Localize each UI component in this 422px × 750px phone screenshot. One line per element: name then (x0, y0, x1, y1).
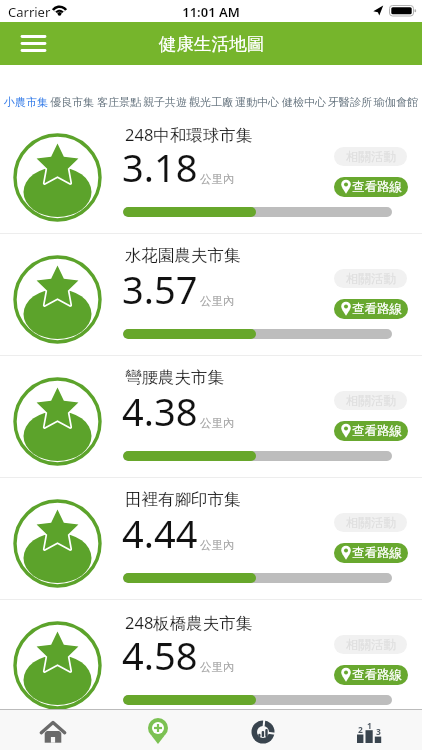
staticText: 查看路線 (352, 667, 402, 683)
button[interactable]: 客庄景點 (97, 95, 141, 109)
staticText: 4.58 (122, 629, 198, 681)
button[interactable]: 查看路線 (334, 299, 408, 319)
button[interactable]: 親子共遊 (143, 95, 187, 109)
staticText: 4.44 (122, 507, 198, 559)
staticText: 相關活動 (346, 637, 396, 653)
button[interactable]: 健檢中心 (282, 95, 326, 109)
staticText: 248板橋農夫市集 (125, 611, 253, 634)
staticText: 3 (376, 726, 381, 738)
staticText: 查看路線 (352, 301, 402, 317)
button[interactable] (210, 709, 316, 750)
button[interactable]: 查看路線 (334, 665, 408, 685)
button[interactable]: 查看路線 (334, 543, 408, 563)
staticText: 查看路線 (352, 545, 402, 561)
staticText: 相關活動 (346, 149, 396, 165)
staticText: 健康生活地圖 (159, 33, 264, 55)
button[interactable]: 相關活動 (334, 391, 407, 410)
button[interactable]: 觀光工廠 (189, 95, 233, 109)
staticText: 公里內 (200, 172, 235, 186)
staticText: 11:01 AM (0, 3, 422, 21)
button[interactable]: 相關活動 (334, 269, 407, 288)
button[interactable]: 查看路線 (334, 177, 408, 197)
button[interactable]: 相關活動 (334, 635, 407, 654)
staticText: 田裡有腳印市集 (125, 489, 241, 510)
button[interactable]: 牙醫診所 (328, 95, 372, 109)
staticText: 2 (358, 724, 363, 736)
button[interactable]: 相關活動 (334, 147, 407, 166)
staticText: 查看路線 (352, 179, 402, 195)
staticText: 3.57 (122, 263, 198, 315)
button[interactable]: 相關活動 (334, 513, 407, 532)
button[interactable]: 2 (316, 709, 422, 750)
button[interactable] (0, 709, 105, 750)
button[interactable] (105, 709, 210, 750)
staticText: 彎腰農夫市集 (125, 367, 224, 388)
staticText: 水花園農夫市集 (125, 245, 241, 266)
staticText: 4.38 (122, 385, 198, 437)
staticText: 相關活動 (346, 515, 396, 531)
staticText: Carrier (8, 3, 51, 21)
staticText: 1 (367, 720, 372, 732)
button[interactable]: 小農市集 (4, 95, 48, 109)
button[interactable]: 查看路線 (334, 421, 408, 441)
staticText: 公里內 (200, 294, 235, 308)
staticText: 248中和環球市集 (125, 123, 253, 146)
staticText: 相關活動 (346, 271, 396, 287)
button[interactable] (22, 35, 45, 52)
staticText: 公里內 (200, 538, 235, 552)
staticText: 公里內 (200, 416, 235, 430)
staticText: 查看路線 (352, 423, 402, 439)
staticText: 相關活動 (346, 393, 396, 409)
button[interactable]: 瑜伽會館 (374, 95, 418, 109)
button[interactable]: 優良市集 (50, 95, 94, 109)
button[interactable]: 運動中心 (235, 95, 279, 109)
staticText: 3.18 (122, 141, 198, 193)
staticText: 公里內 (200, 660, 235, 674)
